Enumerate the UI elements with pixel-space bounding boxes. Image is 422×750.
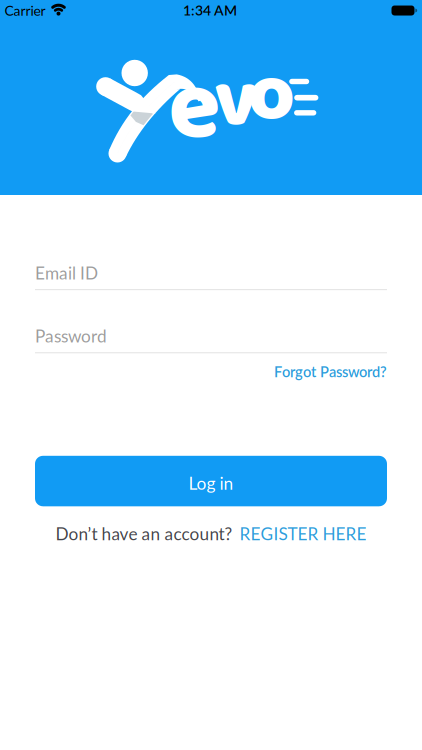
staticText: v [214, 37, 258, 166]
staticText: o [248, 32, 295, 160]
staticText: Email ID [35, 262, 98, 283]
staticText: Log in [188, 473, 233, 493]
button[interactable]: REGISTER HERE [239, 523, 366, 544]
staticText: Password [35, 326, 107, 346]
staticText: REGISTER HERE [239, 523, 366, 544]
button[interactable]: Password [35, 326, 387, 353]
staticText: e [168, 33, 220, 185]
staticText: 1:34 AM [183, 2, 237, 19]
staticText: Carrier [4, 2, 45, 19]
staticText: Forgot Password? [274, 363, 387, 380]
button[interactable]: Log in [35, 456, 387, 506]
button[interactable]: Email ID [35, 262, 387, 290]
button[interactable]: Forgot Password? [274, 363, 387, 380]
staticText: Don’t have an account? [55, 523, 232, 544]
